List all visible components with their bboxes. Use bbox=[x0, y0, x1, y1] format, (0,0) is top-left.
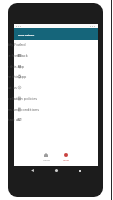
button[interactable]: Cancellation policies bbox=[14, 93, 98, 104]
staticText: Modify Found bbox=[8, 42, 51, 47]
button[interactable]: Share this app bbox=[14, 71, 98, 82]
button[interactable]: Home bbox=[52, 166, 61, 175]
button[interactable]: Recent apps bbox=[75, 166, 84, 175]
button[interactable]: Modify Found bbox=[14, 39, 98, 50]
button[interactable]: More bbox=[59, 153, 73, 161]
staticText: More bbox=[63, 158, 69, 161]
button[interactable]: Terms and conditions bbox=[14, 104, 98, 115]
button[interactable]: Home bbox=[39, 153, 53, 161]
staticText: Cancellation policies bbox=[8, 96, 51, 101]
button[interactable]: About us bbox=[14, 82, 98, 93]
staticText: Terms and conditions bbox=[8, 107, 51, 112]
staticText: More Options bbox=[18, 33, 35, 36]
button[interactable]: Contact us bbox=[14, 114, 98, 125]
staticText: Home bbox=[43, 158, 50, 161]
button[interactable]: Write feedback bbox=[14, 50, 98, 61]
button[interactable]: Rate this app bbox=[14, 61, 98, 72]
staticText: Share this app bbox=[8, 74, 51, 79]
staticText: Contact us bbox=[8, 117, 51, 122]
staticText: About us bbox=[8, 85, 51, 90]
staticText: Rate this app bbox=[8, 64, 51, 69]
staticText: Write feedback bbox=[8, 53, 51, 58]
button[interactable]: Back bbox=[28, 166, 37, 175]
